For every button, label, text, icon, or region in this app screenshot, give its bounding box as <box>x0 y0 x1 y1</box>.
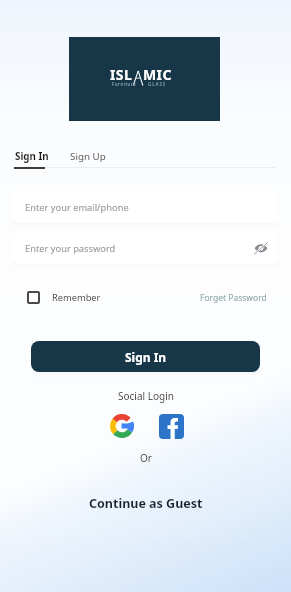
staticText: Remember <box>52 291 101 304</box>
button[interactable]: Remember <box>27 291 101 304</box>
staticText: Or <box>140 451 152 465</box>
staticText: Sign Up <box>70 150 106 163</box>
staticText: Social Login <box>118 389 174 403</box>
button[interactable]: Enter your password <box>13 232 278 264</box>
button[interactable]: Enter your email/phone <box>13 191 278 223</box>
button[interactable]: Sign in with Facebook <box>159 414 184 439</box>
button[interactable]: Sign In <box>15 150 49 163</box>
staticText: Enter your email/phone <box>25 201 129 214</box>
staticText: Forget Password <box>200 292 267 304</box>
staticText: Enter your password <box>25 242 116 255</box>
staticText: ISL <box>110 65 133 84</box>
button[interactable]: Sign In <box>31 341 260 372</box>
button[interactable]: Sign Up <box>70 150 106 163</box>
staticText: Furniture <box>112 81 137 87</box>
button[interactable]: Sign in with Google <box>110 414 134 438</box>
staticText: MIC <box>143 65 172 84</box>
button[interactable]: Forget Password <box>200 292 267 304</box>
staticText: Sign In <box>125 349 167 365</box>
staticText: GLASS <box>148 81 167 87</box>
other: Toggle password visibility <box>254 241 268 255</box>
button[interactable]: Continue as Guest <box>0 495 291 512</box>
staticText: Sign In <box>15 150 49 163</box>
staticText: Continue as Guest <box>89 495 203 512</box>
